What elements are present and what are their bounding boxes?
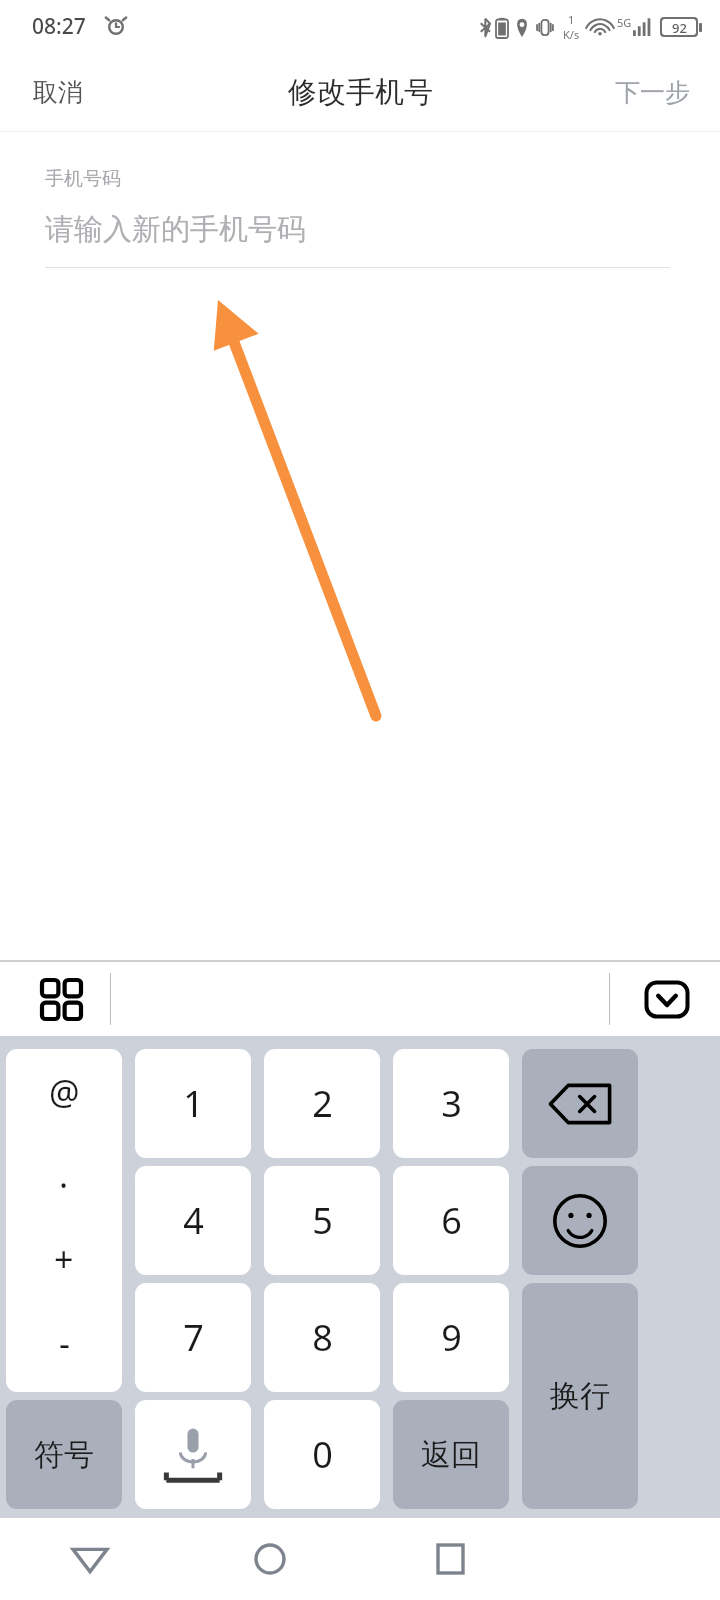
button[interactable]: Emoji [522,1166,638,1275]
button[interactable]: 符号 [6,1400,122,1509]
staticText: 修改手机号 [288,74,433,111]
button[interactable]: 8 [264,1283,380,1392]
button[interactable]: Voice input [135,1400,251,1509]
staticText: 请输入新的手机号码 [45,211,306,248]
staticText: 取消 [33,77,83,108]
button[interactable]: Recents [360,1518,540,1600]
staticText: @ [49,1069,80,1115]
button[interactable]: Hide keyboard [636,968,698,1030]
button[interactable]: Backspace [522,1049,638,1158]
button[interactable]: 7 [135,1283,251,1392]
button[interactable]: @ [6,1049,122,1392]
staticText: 0 [312,1430,333,1479]
button[interactable]: 4 [135,1166,251,1275]
staticText: 08:27 [32,12,86,41]
staticText: 7 [183,1313,204,1362]
button[interactable]: 2 [264,1049,380,1158]
button[interactable]: 9 [393,1283,509,1392]
staticText: 92 [672,19,687,35]
button[interactable]: 0 [264,1400,380,1509]
staticText: 换行 [550,1377,610,1415]
button[interactable]: Home [180,1518,360,1600]
staticText: 3 [441,1079,462,1128]
staticText: 返回 [421,1436,481,1474]
staticText: 5G [617,15,632,30]
staticText: 下一步 [615,77,690,108]
staticText: 4 [183,1196,204,1245]
button[interactable]: 3 [393,1049,509,1158]
button[interactable]: 取消 [0,54,116,131]
staticText: - [59,1320,70,1366]
button[interactable]: Keyboard layouts [28,966,94,1032]
staticText: K/s [563,27,580,42]
button[interactable]: 换行 [522,1283,638,1509]
staticText: 5 [312,1196,333,1245]
staticText: 6 [441,1196,462,1245]
staticText: 1 [183,1079,204,1128]
button[interactable]: 6 [393,1166,509,1275]
button[interactable]: Back [0,1518,180,1600]
staticText: . [59,1152,69,1198]
button[interactable]: 返回 [393,1400,509,1509]
staticText: 1 [568,12,575,27]
button[interactable]: 5 [264,1166,380,1275]
button[interactable]: 下一步 [585,54,720,131]
staticText: 8 [312,1313,333,1362]
staticText: 9 [441,1313,462,1362]
staticText: + [54,1236,74,1282]
staticText: 2 [312,1079,333,1128]
button[interactable]: 请输入新的手机号码 [45,207,670,251]
staticText: 手机号码 [45,167,121,191]
button[interactable]: 1 [135,1049,251,1158]
staticText: 符号 [34,1436,94,1474]
